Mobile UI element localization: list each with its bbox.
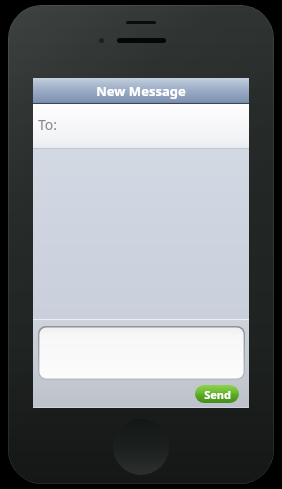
staticText: To: [38, 115, 58, 134]
button[interactable] [38, 326, 245, 380]
staticText: New Message [96, 82, 186, 100]
staticText: Send [204, 387, 231, 402]
button[interactable]: Home [113, 419, 169, 475]
button[interactable]: Send [195, 385, 239, 403]
button[interactable]: To: [33, 104, 249, 149]
